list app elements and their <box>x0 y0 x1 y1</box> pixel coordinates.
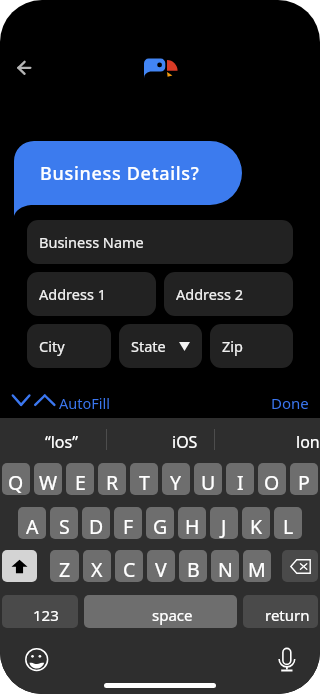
button[interactable]: D <box>82 507 110 539</box>
staticText: J <box>221 513 227 539</box>
staticText: D <box>89 513 104 539</box>
button[interactable]: Shift <box>2 550 37 582</box>
staticText: F <box>123 513 134 539</box>
staticText: “los” <box>45 431 78 453</box>
staticText: T <box>139 469 150 495</box>
button[interactable]: Address 1 <box>27 272 156 316</box>
staticText: W <box>39 469 58 495</box>
staticText: Y <box>170 469 182 495</box>
staticText: I <box>237 469 244 495</box>
staticText: B <box>187 556 200 582</box>
staticText: iOS <box>172 431 198 453</box>
button[interactable]: K <box>242 507 270 539</box>
button[interactable]: Zip <box>210 324 293 368</box>
staticText: Zip <box>222 336 243 356</box>
staticText: Z <box>59 556 71 582</box>
staticText: N <box>218 556 233 582</box>
button[interactable]: M <box>243 550 271 582</box>
staticText: L <box>283 513 294 539</box>
button[interactable]: AutoFill <box>0 388 120 418</box>
button[interactable]: N <box>211 550 239 582</box>
button[interactable]: Backspace <box>282 550 318 582</box>
staticText: City <box>39 336 65 356</box>
button[interactable]: I <box>226 463 254 495</box>
staticText: Address 1 <box>39 284 106 304</box>
button[interactable]: Z <box>50 550 79 582</box>
staticText: State <box>131 336 166 356</box>
button[interactable]: R <box>98 463 126 495</box>
button[interactable]: 123 <box>2 595 78 628</box>
button[interactable]: Dictate <box>276 645 298 675</box>
staticText: O <box>264 469 280 495</box>
button[interactable]: B <box>179 550 207 582</box>
staticText: 123 <box>33 605 59 625</box>
staticText: G <box>153 513 168 539</box>
button[interactable]: Address 2 <box>164 272 293 316</box>
staticText: V <box>155 556 167 582</box>
button[interactable]: O <box>258 463 286 495</box>
button[interactable]: J <box>210 507 238 539</box>
button[interactable]: U <box>194 463 222 495</box>
button[interactable]: Y <box>162 463 190 495</box>
staticText: Q <box>8 469 24 495</box>
button[interactable]: E <box>66 463 94 495</box>
button[interactable]: A <box>18 507 46 539</box>
button[interactable]: Q <box>2 463 30 495</box>
button[interactable]: Business Name <box>27 220 293 264</box>
button[interactable]: V <box>147 550 175 582</box>
staticText: P <box>298 469 310 495</box>
staticText: lons <box>296 431 320 453</box>
button[interactable]: iOS <box>106 418 214 463</box>
button[interactable]: X <box>83 550 111 582</box>
button[interactable]: lons <box>214 418 320 463</box>
staticText: X <box>91 556 103 582</box>
button[interactable]: Emoji <box>24 646 50 672</box>
button[interactable]: return <box>243 595 318 628</box>
staticText: A <box>26 513 39 539</box>
staticText: return <box>265 605 310 625</box>
staticText: R <box>106 469 119 495</box>
staticText: space <box>152 605 193 625</box>
staticText: E <box>75 469 86 495</box>
staticText: M <box>248 556 266 582</box>
button[interactable]: W <box>34 463 62 495</box>
staticText: S <box>59 513 70 539</box>
button[interactable]: F <box>114 507 142 539</box>
staticText: H <box>185 513 200 539</box>
staticText: Business Details? <box>40 161 200 186</box>
button[interactable]: space <box>84 595 237 628</box>
staticText: K <box>250 513 263 539</box>
button[interactable]: T <box>130 463 158 495</box>
staticText: U <box>201 469 216 495</box>
button[interactable]: State <box>119 324 202 368</box>
button[interactable]: Back <box>10 54 40 82</box>
staticText: Business Name <box>39 232 144 252</box>
button[interactable]: H <box>178 507 206 539</box>
button[interactable]: L <box>274 507 302 539</box>
button[interactable]: Done <box>271 393 309 413</box>
button[interactable]: P <box>290 463 318 495</box>
button[interactable]: “los” <box>0 418 106 463</box>
button[interactable]: City <box>27 324 111 368</box>
staticText: Address 2 <box>176 284 243 304</box>
staticText: C <box>123 556 136 582</box>
button[interactable]: G <box>146 507 174 539</box>
staticText: Done <box>271 393 309 413</box>
button[interactable]: S <box>50 507 78 539</box>
staticText: AutoFill <box>59 393 110 413</box>
button[interactable]: C <box>115 550 143 582</box>
